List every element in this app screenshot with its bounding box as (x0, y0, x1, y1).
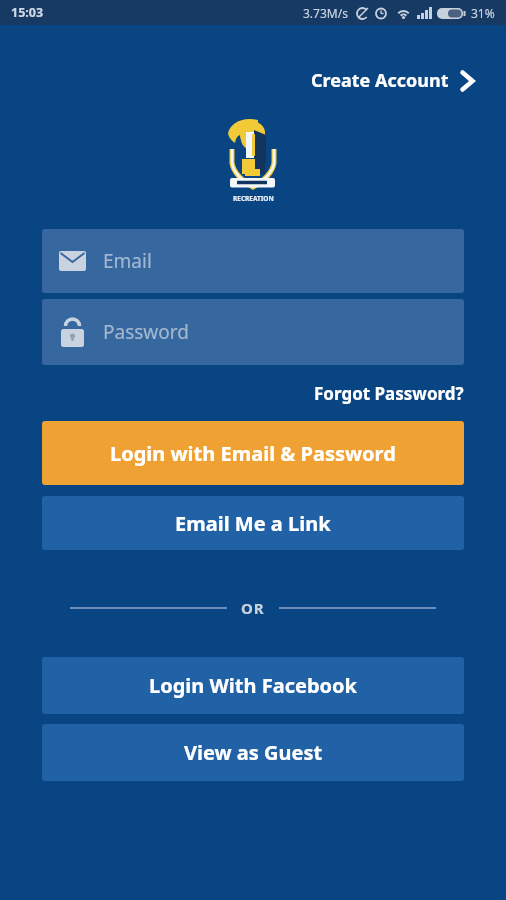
staticText: Forgot Password? (314, 382, 464, 405)
staticText: Email (103, 248, 152, 274)
button[interactable]: Login with Email & Password (42, 421, 464, 485)
button[interactable]: View as Guest (42, 724, 464, 781)
staticText: Create Account (311, 68, 449, 93)
staticText: View as Guest (184, 739, 323, 766)
button[interactable]: Forgot Password? (314, 382, 464, 405)
staticText: OR (241, 598, 265, 618)
staticText: RECREATION (233, 194, 274, 203)
button[interactable]: Email Me a Link (42, 496, 464, 550)
staticText: 15:03 (11, 4, 44, 21)
staticText: Login with Email & Password (110, 440, 396, 467)
staticText: Login With Facebook (149, 672, 357, 699)
button[interactable]: Create Account (311, 68, 475, 93)
button[interactable]: Password (42, 299, 464, 365)
button[interactable]: Email (42, 229, 464, 293)
button[interactable]: Login With Facebook (42, 657, 464, 714)
staticText: 3.73M/s (303, 5, 348, 21)
staticText: Email Me a Link (175, 510, 331, 537)
staticText: Password (103, 319, 189, 345)
staticText: 31% (471, 5, 495, 21)
